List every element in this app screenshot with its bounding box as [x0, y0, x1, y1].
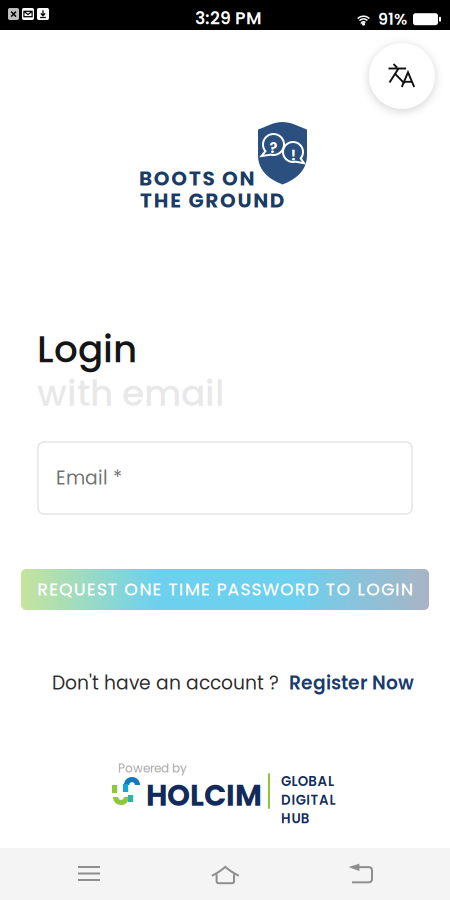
staticText: B: [308, 772, 317, 791]
staticText: U: [291, 809, 300, 828]
staticText: U: [238, 186, 252, 214]
staticText: W: [262, 577, 279, 602]
staticText: E: [170, 186, 181, 214]
staticText: Login: [37, 323, 137, 375]
staticText: A: [319, 791, 329, 809]
staticText: T: [326, 577, 336, 602]
staticText: H: [154, 186, 169, 214]
staticText: O: [124, 577, 138, 602]
staticText: O: [220, 186, 236, 214]
staticText: G: [381, 577, 394, 602]
staticText: N: [240, 164, 255, 192]
staticText: I: [395, 577, 400, 602]
staticText: HOLCIM: [146, 775, 262, 816]
staticText: D: [281, 791, 291, 809]
button[interactable]: Email *: [38, 442, 412, 514]
staticText: L: [291, 772, 297, 791]
staticText: L: [329, 791, 335, 809]
button[interactable]: Back: [337, 851, 387, 897]
staticText: I: [179, 577, 184, 602]
staticText: Email *: [56, 465, 122, 491]
staticText: Q: [59, 577, 73, 602]
staticText: R: [205, 186, 218, 214]
button[interactable]: Register Now: [289, 670, 414, 696]
staticText: N: [401, 577, 413, 602]
staticText: Powered by: [118, 760, 187, 777]
staticText: I: [291, 791, 295, 809]
staticText: Don't have an account ?: [52, 670, 279, 696]
staticText: S: [251, 577, 261, 602]
staticText: S: [97, 577, 107, 602]
staticText: O: [154, 164, 170, 192]
staticText: R: [37, 577, 48, 602]
staticText: R: [295, 577, 306, 602]
staticText: T: [189, 164, 201, 192]
staticText: B: [139, 164, 152, 192]
staticText: A: [227, 577, 239, 602]
staticText: O: [366, 577, 380, 602]
staticText: G: [296, 791, 306, 809]
button[interactable]: R: [21, 569, 429, 610]
staticText: G: [281, 772, 291, 791]
staticText: !: [291, 145, 297, 165]
staticText: E: [152, 577, 161, 602]
staticText: Register Now: [289, 670, 414, 696]
button[interactable]: Change language: [369, 43, 435, 109]
staticText: P: [216, 577, 226, 602]
staticText: L: [357, 577, 365, 602]
staticText: M: [185, 577, 200, 602]
staticText: O: [298, 772, 308, 791]
staticText: E: [49, 577, 58, 602]
staticText: 3:29 PM: [195, 6, 262, 30]
staticText: with email: [37, 368, 225, 418]
staticText: D: [307, 577, 319, 602]
staticText: A: [318, 772, 328, 791]
staticText: T: [311, 791, 319, 809]
staticText: T: [140, 186, 152, 214]
staticText: T: [108, 577, 118, 602]
button[interactable]: Recent apps: [64, 852, 114, 895]
staticText: S: [203, 164, 215, 192]
staticText: I: [306, 791, 310, 809]
staticText: E: [201, 577, 210, 602]
staticText: ?: [269, 137, 277, 158]
staticText: G: [189, 186, 204, 214]
staticText: E: [87, 577, 96, 602]
button[interactable]: Home: [197, 852, 254, 898]
staticText: O: [280, 577, 294, 602]
staticText: 91%: [378, 8, 407, 30]
staticText: S: [240, 577, 250, 602]
staticText: H: [281, 809, 291, 828]
staticText: U: [74, 577, 86, 602]
staticText: O: [171, 164, 187, 192]
staticText: O: [222, 164, 238, 192]
staticText: O: [336, 577, 350, 602]
staticText: L: [328, 772, 334, 791]
staticText: B: [301, 809, 310, 828]
staticText: D: [270, 186, 285, 214]
staticText: N: [253, 186, 268, 214]
staticText: T: [168, 577, 178, 602]
staticText: N: [139, 577, 151, 602]
